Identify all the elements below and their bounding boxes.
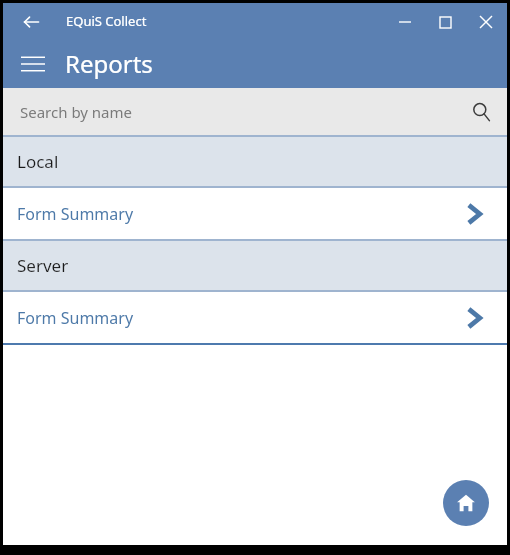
button[interactable]: Close bbox=[465, 5, 507, 39]
staticText: Server bbox=[17, 254, 69, 277]
other: Search bbox=[463, 94, 499, 130]
button[interactable]: Menu bbox=[11, 42, 55, 86]
staticText: Form Summary bbox=[17, 307, 134, 329]
button[interactable]: Form Summary bbox=[3, 292, 507, 343]
button[interactable]: Home bbox=[443, 480, 489, 526]
button[interactable]: Form Summary bbox=[3, 188, 507, 239]
button[interactable]: Maximize bbox=[425, 5, 465, 39]
button[interactable]: Minimize bbox=[385, 5, 425, 39]
button[interactable]: Back bbox=[13, 4, 49, 40]
staticText: Reports bbox=[65, 47, 153, 80]
staticText: EQuiS Collect bbox=[66, 12, 147, 30]
staticText: Search by name bbox=[20, 102, 133, 122]
staticText: Local bbox=[17, 150, 59, 173]
button[interactable]: Search by name bbox=[3, 88, 507, 135]
staticText: Form Summary bbox=[17, 203, 134, 225]
